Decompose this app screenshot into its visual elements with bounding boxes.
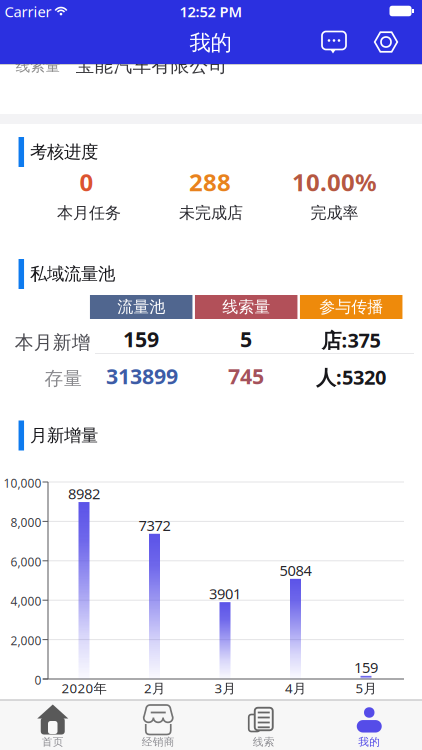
staticText: 完成率 [310,203,358,223]
staticText: 本月新增 [15,331,91,354]
staticText: 6,000 [10,554,41,570]
button[interactable]: 参与传播 [300,295,402,319]
staticText: 12:52 PM [179,2,242,21]
staticText: 5月 [355,679,376,697]
staticText: 本月任务 [57,203,121,223]
staticText: 我的 [358,735,380,748]
staticText: 参与传播 [319,297,383,317]
staticText: 店:375 [321,327,380,353]
staticText: 4,000 [10,593,41,609]
button[interactable]: 线索 [211,700,316,750]
staticText: 流量池 [117,297,165,317]
staticText: 首页 [42,735,64,748]
staticText: 未完成店 [179,203,243,223]
button[interactable]: 流量池 [90,295,192,319]
staticText: 313899 [106,362,178,390]
staticText: 7372 [138,515,170,535]
staticText: 159 [354,658,378,677]
button[interactable]: 经销商 [105,700,211,750]
staticText: 4月 [285,679,306,697]
staticText: 线索量 [222,297,270,317]
staticText: 8982 [68,484,100,503]
staticText: 人:5320 [316,364,386,390]
staticText: 经销商 [142,735,175,748]
staticText: 宝能汽车有限公司 [75,54,227,77]
staticText: 考核进度 [30,141,98,163]
button[interactable]: 首页 [0,700,105,750]
staticText: 2020年 [61,679,106,697]
staticText: 8,000 [10,514,41,530]
staticText: 2,000 [10,633,41,648]
staticText: 288 [189,166,231,198]
staticText: 0 [79,166,93,198]
staticText: 线索量 [15,57,60,75]
staticText: 月新增量 [30,425,98,446]
staticText: 5 [240,325,252,353]
staticText: 3月 [214,679,235,697]
staticText: 我的 [189,30,231,56]
staticText: 2月 [144,679,165,697]
staticText: 745 [228,362,264,390]
staticText: 存量 [44,367,82,390]
staticText: 159 [123,325,159,353]
staticText: 0 [34,672,41,688]
staticText: 3901 [209,584,241,603]
button[interactable]: 线索量 [195,295,297,319]
staticText: Carrier [4,2,51,21]
staticText: 5084 [279,561,311,580]
staticText: 10,000 [3,475,41,491]
staticText: 线索 [253,735,275,748]
staticText: 私域流量池 [30,263,115,285]
button[interactable] [369,25,403,59]
button[interactable]: 我的 [316,700,422,750]
staticText: 10.00% [292,166,377,198]
button[interactable] [317,25,351,59]
